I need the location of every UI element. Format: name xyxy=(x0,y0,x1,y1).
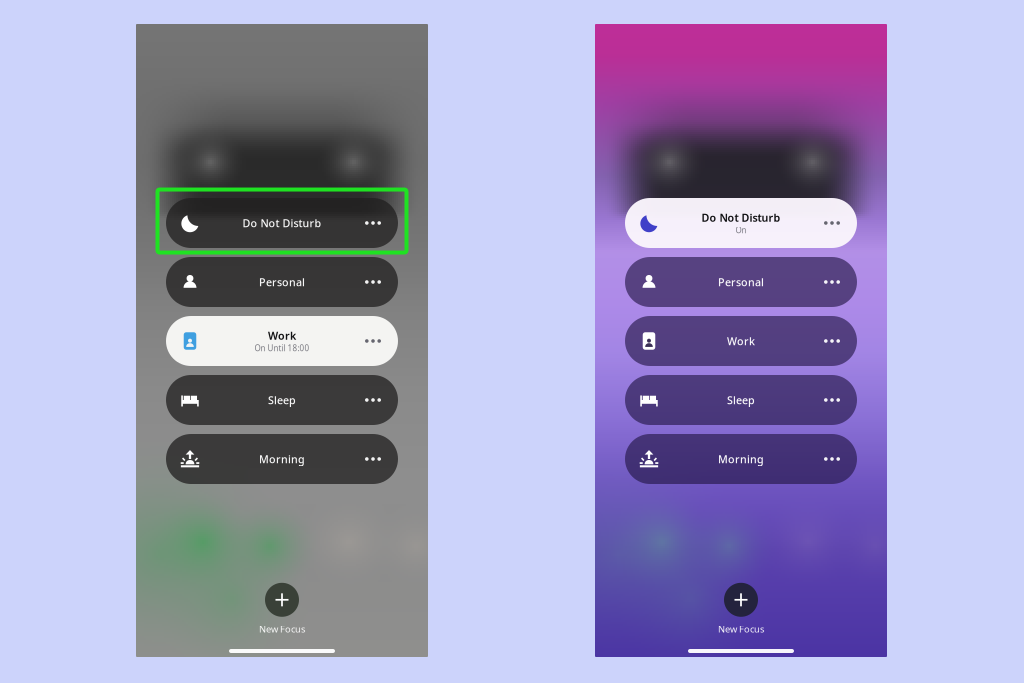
button[interactable]: Personal xyxy=(625,257,857,307)
button[interactable]: Morning xyxy=(166,434,398,484)
button[interactable]: Work xyxy=(166,316,398,366)
staticText: Morning xyxy=(718,452,764,466)
staticText: Sleep xyxy=(727,393,755,407)
button[interactable]: Sleep xyxy=(625,375,857,425)
button[interactable]: Morning xyxy=(625,434,857,484)
staticText: On Until 18:00 xyxy=(254,343,309,353)
button[interactable]: Do Not Disturb xyxy=(166,198,398,248)
staticText: Do Not Disturb xyxy=(701,211,780,225)
button[interactable]: Personal xyxy=(166,257,398,307)
staticText: Work xyxy=(268,329,296,343)
staticText: On xyxy=(735,225,746,235)
staticText: Morning xyxy=(259,452,305,466)
staticText: Personal xyxy=(718,275,764,289)
button[interactable]: Sleep xyxy=(166,375,398,425)
button[interactable]: New Focus xyxy=(259,583,305,635)
staticText: Do Not Disturb xyxy=(242,216,321,230)
staticText: Personal xyxy=(259,275,305,289)
button[interactable]: Work xyxy=(625,316,857,366)
button[interactable]: New Focus xyxy=(718,583,764,635)
staticText: New Focus xyxy=(718,623,764,635)
button[interactable]: Do Not Disturb xyxy=(625,198,857,248)
staticText: Work xyxy=(727,334,755,348)
staticText: Sleep xyxy=(268,393,296,407)
staticText: New Focus xyxy=(259,623,305,635)
